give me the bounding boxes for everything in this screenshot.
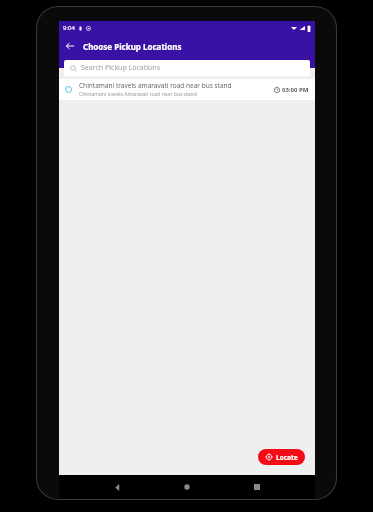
button[interactable]: Search Pickup Locations <box>64 60 310 76</box>
staticText: Locate <box>276 453 298 462</box>
button[interactable]: Back <box>105 475 129 499</box>
button[interactable]: Back <box>59 35 81 57</box>
staticText: 03:00 PM <box>282 86 309 94</box>
staticText: Chintamani travels Amaravati road near b… <box>79 91 197 98</box>
button[interactable]: Home <box>175 475 199 499</box>
staticText: 9:04 <box>63 24 75 32</box>
staticText: Search Pickup Locations <box>81 63 161 73</box>
button[interactable]: Chintamani travels amaravati road near b… <box>59 79 315 100</box>
button[interactable]: Locate <box>258 449 305 465</box>
button[interactable]: Recent apps <box>245 475 269 499</box>
staticText: Choose Pickup Locations <box>83 41 182 52</box>
staticText: Chintamani travels amaravati road near b… <box>79 81 232 90</box>
